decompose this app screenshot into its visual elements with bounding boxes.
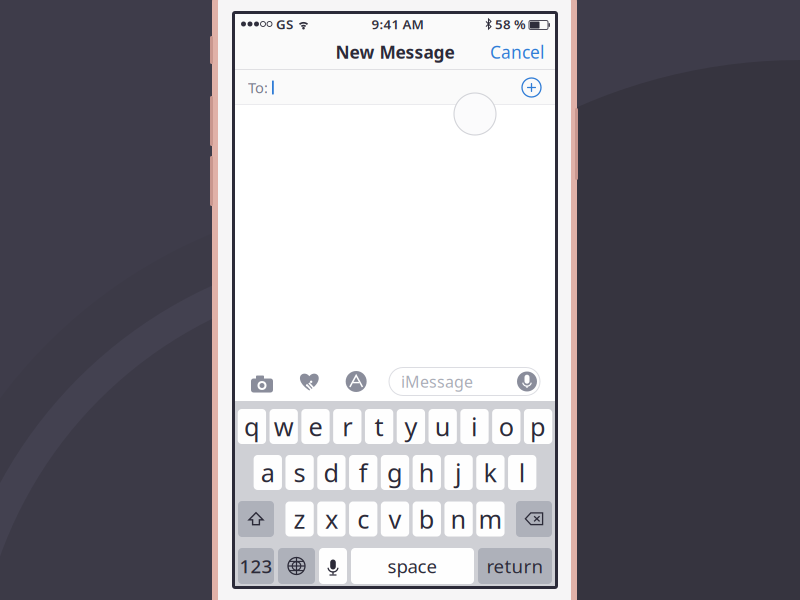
staticText: 123 — [239, 554, 272, 578]
button[interactable]: y — [397, 409, 425, 444]
staticText: a — [261, 456, 275, 489]
button[interactable]: Camera — [247, 372, 277, 390]
button[interactable]: Shift — [238, 501, 274, 537]
button[interactable]: q — [238, 409, 266, 444]
staticText: c — [357, 502, 369, 536]
button[interactable]: space — [351, 548, 474, 584]
staticText: n — [451, 502, 467, 536]
button[interactable]: x — [317, 501, 345, 536]
button[interactable]: Delete — [516, 501, 552, 537]
staticText: z — [294, 502, 306, 536]
staticText: b — [419, 502, 435, 536]
staticText: return — [486, 554, 543, 578]
button[interactable]: Next keyboard — [278, 548, 315, 584]
button[interactable]: s — [285, 455, 314, 490]
button[interactable]: Apps — [342, 371, 371, 392]
button[interactable]: h — [413, 455, 441, 490]
button[interactable]: j — [444, 455, 473, 490]
button[interactable]: l — [508, 455, 536, 490]
button[interactable]: m — [476, 501, 504, 536]
staticText: o — [499, 410, 514, 443]
button[interactable]: p — [524, 409, 552, 444]
staticText: i — [471, 410, 478, 443]
button[interactable]: r — [333, 409, 361, 444]
button[interactable]: i — [460, 409, 489, 444]
button[interactable]: n — [444, 501, 473, 536]
button[interactable]: g — [381, 455, 409, 490]
staticText: u — [435, 410, 451, 443]
staticText: m — [478, 502, 502, 536]
staticText: g — [387, 456, 403, 489]
button[interactable]: o — [492, 409, 520, 444]
button[interactable]: e — [301, 409, 330, 444]
staticText: 58 % — [495, 15, 526, 33]
button[interactable]: Cancel — [479, 34, 555, 69]
staticText: space — [387, 554, 437, 578]
staticText: k — [483, 456, 497, 489]
staticText: w — [274, 410, 294, 443]
staticText: iMessage — [401, 371, 473, 392]
staticText: y — [404, 410, 417, 443]
button[interactable]: v — [381, 501, 409, 536]
staticText: h — [419, 456, 435, 489]
staticText: x — [325, 502, 338, 536]
button[interactable]: d — [317, 455, 345, 490]
staticText: s — [294, 456, 306, 489]
staticText: To: — [248, 78, 268, 97]
staticText: j — [455, 456, 462, 489]
button[interactable]: return — [478, 548, 552, 584]
button[interactable]: c — [349, 501, 377, 536]
staticText: p — [530, 410, 546, 443]
button[interactable]: f — [349, 455, 377, 490]
staticText: d — [323, 456, 339, 489]
button[interactable]: k — [476, 455, 504, 490]
staticText: v — [388, 502, 401, 536]
staticText: New Message — [335, 40, 454, 63]
button[interactable]: b — [413, 501, 441, 536]
button[interactable]: iMessage — [389, 367, 540, 395]
staticText: r — [342, 410, 352, 443]
staticText: 9:41 AM — [371, 15, 423, 33]
staticText: e — [308, 410, 322, 443]
staticText: f — [359, 456, 368, 489]
button[interactable]: Digital Touch — [295, 372, 323, 391]
button[interactable]: Add contact — [522, 78, 541, 97]
staticText: t — [375, 410, 384, 443]
button[interactable]: a — [254, 455, 282, 490]
button[interactable]: z — [285, 501, 314, 536]
button[interactable]: t — [365, 409, 393, 444]
staticText: Cancel — [490, 40, 544, 63]
button[interactable]: Dictation — [319, 548, 347, 584]
staticText: GS — [276, 15, 293, 33]
staticText: l — [519, 456, 526, 489]
button[interactable]: w — [269, 409, 298, 444]
button[interactable]: 123 — [238, 548, 274, 584]
button[interactable]: u — [428, 409, 457, 444]
staticText: q — [244, 410, 260, 443]
